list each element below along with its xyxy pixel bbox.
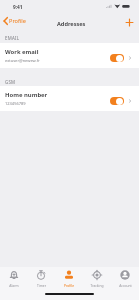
staticText: extuser@newew.fr: [5, 58, 40, 63]
button[interactable]: Timer: [27, 267, 55, 290]
button[interactable]: Tracking: [83, 267, 111, 290]
staticText: Account: [119, 283, 132, 287]
staticText: 9:41: [13, 4, 23, 11]
button[interactable]: Toggle Home number: [110, 97, 124, 105]
staticText: Profile: [64, 283, 74, 287]
staticText: Tracking: [90, 283, 104, 287]
button[interactable]: Work email: [0, 43, 139, 68]
button[interactable]: Toggle Work email: [110, 54, 124, 62]
staticText: Profile: [9, 17, 26, 25]
staticText: EMAIL: [5, 35, 20, 41]
staticText: GSM: [5, 79, 16, 85]
staticText: 123456789: [5, 101, 26, 106]
button[interactable]: Home number: [0, 86, 139, 111]
button[interactable]: Profile: [55, 267, 83, 290]
button[interactable]: Add address: [123, 16, 135, 28]
staticText: Timer: [37, 283, 46, 287]
staticText: Home number: [5, 91, 48, 99]
staticText: Work email: [5, 48, 39, 56]
button[interactable]: Profile: [1, 15, 28, 27]
button[interactable]: Account: [111, 267, 139, 290]
staticText: Addresses: [57, 20, 86, 28]
staticText: Alarm: [9, 283, 19, 287]
button[interactable]: Alarm: [0, 267, 27, 290]
